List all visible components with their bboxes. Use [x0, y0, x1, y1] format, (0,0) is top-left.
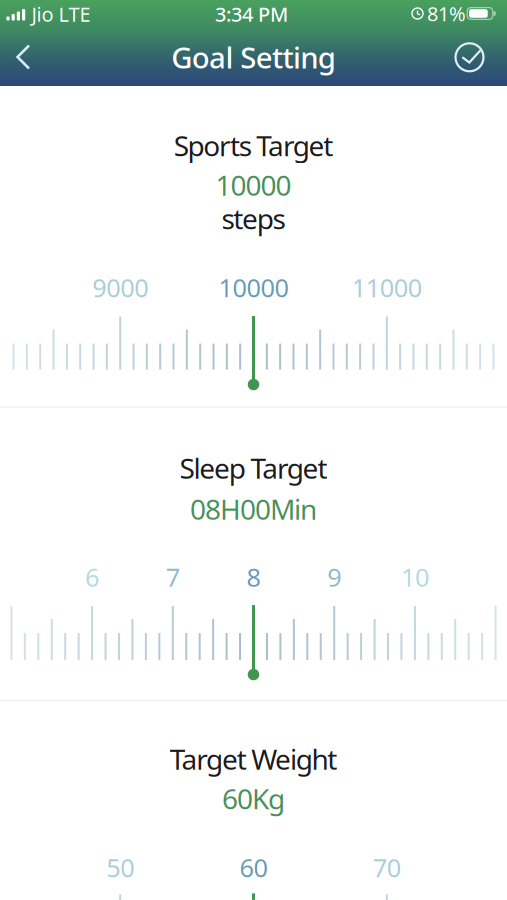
staticText: Target Weight: [170, 740, 337, 778]
staticText: 60Kg: [222, 780, 285, 817]
staticText: 6: [85, 560, 99, 594]
button[interactable]: Back: [1, 35, 45, 79]
staticText: 60: [239, 851, 267, 884]
staticText: 9000: [92, 271, 148, 304]
staticText: 8: [246, 560, 260, 594]
staticText: steps: [221, 200, 286, 237]
staticText: 81%: [427, 0, 466, 27]
staticText: 70: [373, 851, 401, 884]
staticText: 7: [166, 560, 180, 594]
button[interactable]: Confirm: [447, 35, 491, 79]
staticText: Goal Setting: [171, 37, 336, 76]
staticText: 10000: [218, 271, 288, 304]
staticText: 50: [106, 851, 134, 884]
button[interactable]: Adjust sports target: [0, 316, 507, 390]
staticText: 9: [327, 560, 341, 594]
staticText: 10: [401, 560, 429, 594]
button[interactable]: Adjust target weight: [0, 893, 507, 900]
staticText: 11000: [352, 271, 422, 304]
staticText: Jio LTE: [31, 1, 90, 27]
staticText: Sleep Target: [180, 449, 327, 487]
staticText: 3:34 PM: [215, 1, 288, 27]
staticText: 08H00Min: [190, 490, 317, 528]
staticText: 10000: [215, 166, 291, 204]
staticText: Sports Target: [174, 127, 333, 164]
button[interactable]: Adjust sleep target: [0, 605, 507, 680]
